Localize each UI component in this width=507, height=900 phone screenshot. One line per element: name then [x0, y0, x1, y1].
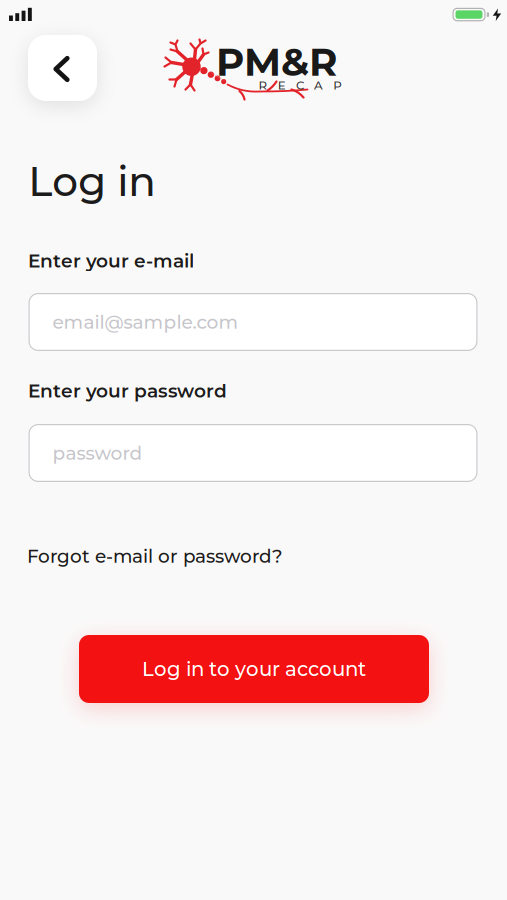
button[interactable]: Back	[28, 35, 97, 101]
staticText: A	[314, 78, 323, 92]
staticText: E	[278, 78, 286, 92]
staticText: C	[296, 78, 304, 92]
staticText: password	[52, 442, 142, 464]
staticText: P	[333, 78, 342, 92]
staticText: Log in to your account	[142, 657, 366, 681]
staticText: Log in	[28, 157, 156, 206]
button[interactable]: Forgot e-mail or password?	[27, 545, 283, 567]
staticText: Forgot e-mail or password?	[27, 545, 283, 567]
staticText: PM&R	[216, 38, 338, 85]
staticText: Enter your e-mail	[28, 249, 194, 272]
button[interactable]: Log in to your account	[79, 635, 429, 703]
staticText: email@sample.com	[52, 311, 238, 333]
button[interactable]: email@sample.com	[28, 293, 477, 351]
button[interactable]: password	[28, 424, 477, 482]
staticText: R	[258, 78, 267, 92]
staticText: Enter your password	[28, 380, 227, 402]
